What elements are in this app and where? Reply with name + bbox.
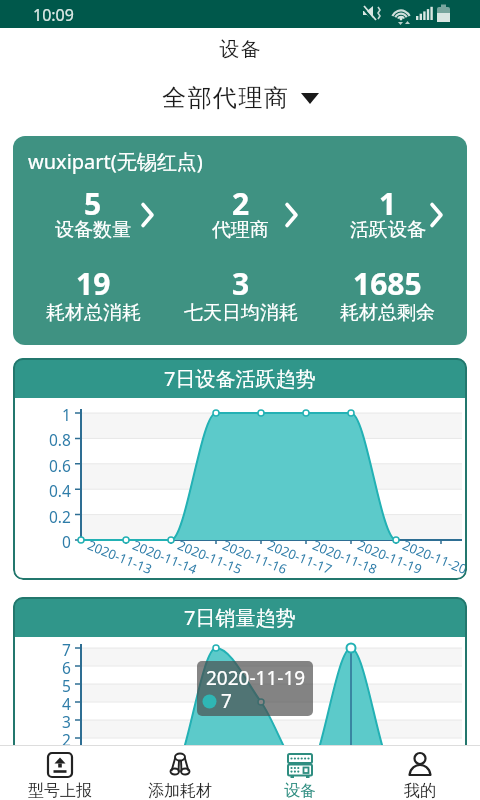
staticText: 全部代理商 bbox=[162, 83, 290, 113]
staticText: 4 bbox=[62, 693, 71, 711]
staticText: 2020-11-15 bbox=[175, 536, 245, 577]
button[interactable]: 添加耗材 bbox=[120, 746, 240, 800]
staticText: 1685 bbox=[353, 263, 422, 304]
staticText: 设备数量 bbox=[55, 218, 131, 242]
staticText: 1 bbox=[62, 404, 71, 422]
staticText: 七天日均消耗 bbox=[184, 301, 298, 325]
staticText: 7 bbox=[221, 688, 232, 714]
staticText: 1 bbox=[62, 747, 71, 765]
staticText: 5 bbox=[62, 675, 71, 693]
staticText: 设备 bbox=[284, 781, 316, 800]
staticText: 0.8 bbox=[49, 429, 71, 447]
staticText: 1 bbox=[379, 183, 397, 224]
staticText: 7日销量趋势 bbox=[184, 604, 296, 631]
staticText: 0.2 bbox=[49, 506, 71, 524]
button[interactable]: 全部代理商 bbox=[162, 83, 319, 113]
button[interactable]: 型号上报 bbox=[0, 746, 120, 800]
staticText: 2 bbox=[232, 183, 250, 224]
staticText: 7 bbox=[62, 639, 71, 657]
staticText: 19 bbox=[76, 263, 111, 304]
staticText: 3 bbox=[62, 711, 71, 729]
staticText: 0.4 bbox=[49, 480, 71, 498]
staticText: 7日设备活跃趋势 bbox=[164, 365, 316, 392]
staticText: 0 bbox=[62, 765, 71, 783]
button[interactable]: 我的 bbox=[360, 746, 480, 800]
staticText: 2020-11-17 bbox=[265, 536, 335, 577]
staticText: 10:09 bbox=[33, 4, 74, 26]
staticText: 我的 bbox=[404, 781, 436, 800]
staticText: 2 bbox=[62, 729, 71, 747]
staticText: 耗材总消耗 bbox=[46, 301, 141, 325]
button[interactable]: wuxipart(无锡红点) bbox=[13, 136, 467, 345]
staticText: 活跃设备 bbox=[350, 218, 426, 242]
staticText: 型号上报 bbox=[28, 781, 92, 800]
staticText: 代理商 bbox=[212, 218, 269, 242]
staticText: 设备 bbox=[219, 37, 261, 62]
staticText: 5 bbox=[84, 183, 102, 224]
staticText: 0 bbox=[62, 531, 71, 549]
staticText: wuxipart(无锡红点) bbox=[28, 148, 203, 175]
staticText: 添加耗材 bbox=[148, 781, 212, 800]
staticText: 2020-11-18 bbox=[310, 536, 380, 577]
staticText: 6 bbox=[62, 657, 71, 675]
button[interactable]: 设备 bbox=[240, 746, 360, 800]
staticText: 2020-11-13 bbox=[85, 536, 155, 577]
staticText: 耗材总剩余 bbox=[340, 301, 435, 325]
staticText: 0.6 bbox=[49, 455, 71, 473]
staticText: 2020-11-20 bbox=[400, 536, 467, 577]
staticText: 2020-11-14 bbox=[130, 536, 200, 577]
staticText: 2020-11-19 bbox=[355, 536, 425, 577]
staticText: 2020-11-19 bbox=[206, 665, 306, 691]
staticText: 3 bbox=[232, 263, 250, 304]
staticText: 2020-11-16 bbox=[220, 536, 290, 577]
